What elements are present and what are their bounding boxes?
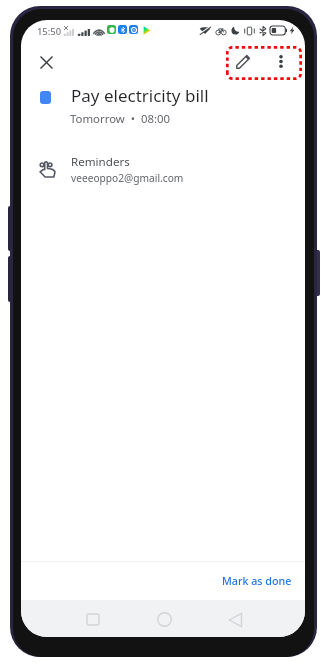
button[interactable]: Home <box>146 601 183 637</box>
button[interactable]: Close <box>28 44 64 80</box>
staticText: Mark as done <box>222 574 292 589</box>
button[interactable]: Pay electricity bill <box>21 82 305 140</box>
button[interactable]: Recents <box>74 601 111 637</box>
staticText: Reminders <box>71 154 130 170</box>
staticText: veeeoppo2@gmail.com <box>71 171 184 185</box>
staticText: Tomorrow • 08:00 <box>70 111 171 127</box>
button[interactable]: Back <box>217 601 254 637</box>
button[interactable]: Edit <box>227 45 259 77</box>
staticText: 15:50 <box>37 25 62 38</box>
button[interactable]: More options <box>265 45 297 77</box>
staticText: Pay electricity bill <box>71 84 209 107</box>
button[interactable]: Mark as done <box>210 565 304 598</box>
button[interactable]: Reminders <box>21 140 305 200</box>
